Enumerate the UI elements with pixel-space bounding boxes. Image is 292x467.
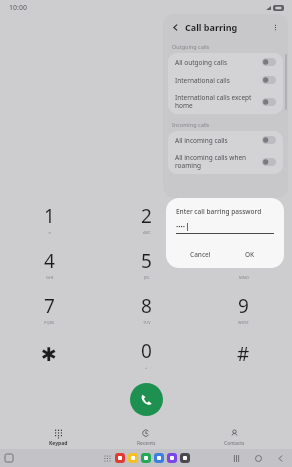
button[interactable]: Recents	[102, 427, 190, 449]
staticText: 1	[44, 203, 55, 229]
button[interactable]: #	[195, 331, 292, 376]
button[interactable]: Home	[254, 454, 263, 463]
button[interactable]: Apps	[103, 454, 112, 463]
staticText: WXYZ	[238, 320, 249, 325]
button[interactable]: 1	[0, 196, 98, 241]
button[interactable]: ✱	[0, 331, 98, 376]
button[interactable]: Contacts	[190, 427, 278, 449]
staticText: 6	[238, 248, 249, 274]
staticText: 2	[141, 203, 152, 229]
button[interactable]: 7	[0, 286, 98, 331]
button[interactable]: App	[128, 453, 138, 463]
button[interactable]: 9	[195, 286, 292, 331]
button[interactable]: App	[115, 453, 125, 463]
button[interactable]: More options	[270, 22, 281, 33]
staticText: Call barring	[185, 21, 238, 33]
button[interactable]: Recent apps	[232, 454, 241, 463]
staticText: All incoming calls	[175, 136, 228, 145]
button[interactable]: OK	[225, 248, 274, 261]
staticText: 3	[238, 203, 249, 229]
staticText: #	[237, 341, 250, 367]
staticText: JKL	[144, 275, 150, 280]
button[interactable]: Keypad	[14, 427, 102, 449]
staticText: +	[145, 365, 148, 370]
staticText: All incoming calls when roaming	[175, 153, 247, 170]
button[interactable]: All incoming calls	[168, 131, 283, 149]
staticText: 9	[238, 293, 249, 319]
button[interactable]: 8	[98, 286, 195, 331]
staticText: 7	[44, 293, 55, 319]
staticText: Recents	[137, 440, 156, 447]
staticText: Enter call barring password	[176, 207, 262, 216]
button[interactable]: App	[154, 453, 164, 463]
staticText: MNO	[239, 275, 249, 280]
staticText: Contacts	[224, 440, 245, 447]
staticText: International calls	[175, 76, 230, 85]
button[interactable]: Capture	[5, 454, 13, 462]
staticText: 10:00	[9, 3, 27, 13]
button[interactable]: 4	[0, 241, 98, 286]
staticText: All outgoing calls	[175, 58, 228, 67]
button[interactable]: International calls	[168, 71, 283, 89]
staticText: ••••	[176, 223, 186, 231]
staticText: 8	[141, 293, 152, 319]
staticText: Cancel	[190, 250, 211, 259]
button[interactable]: International calls except home	[168, 89, 283, 114]
staticText: ABC	[143, 230, 151, 235]
staticText: Outgoing calls	[172, 43, 210, 50]
button[interactable]: 3	[195, 196, 292, 241]
button[interactable]: 0	[98, 331, 195, 376]
button[interactable]: Cancel	[176, 248, 225, 261]
staticText: TUV	[143, 320, 151, 325]
staticText: Keypad	[49, 440, 68, 447]
staticText: DEF	[240, 230, 248, 235]
button[interactable]: App	[180, 453, 190, 463]
button[interactable]: Back	[276, 454, 285, 463]
button[interactable]: All outgoing calls	[168, 53, 283, 71]
button[interactable]: App	[167, 453, 177, 463]
staticText: GHI	[46, 275, 54, 280]
button[interactable]: Call	[130, 383, 163, 416]
staticText: 0	[141, 338, 152, 364]
staticText: OK	[245, 250, 255, 259]
staticText: PQRS	[44, 320, 55, 325]
button[interactable]: 2	[98, 196, 195, 241]
staticText: 4	[44, 248, 55, 274]
staticText: ✱	[41, 343, 57, 365]
staticText: 5	[141, 248, 152, 274]
button[interactable]: 5	[98, 241, 195, 286]
button[interactable]: App	[141, 453, 151, 463]
staticText: Incoming calls	[172, 121, 210, 128]
button[interactable]: Back	[170, 22, 181, 33]
button[interactable]: 6	[195, 241, 292, 286]
staticText: ∞	[48, 230, 52, 235]
staticText: International calls except home	[175, 93, 252, 110]
button[interactable]: All incoming calls when roaming	[168, 149, 283, 174]
